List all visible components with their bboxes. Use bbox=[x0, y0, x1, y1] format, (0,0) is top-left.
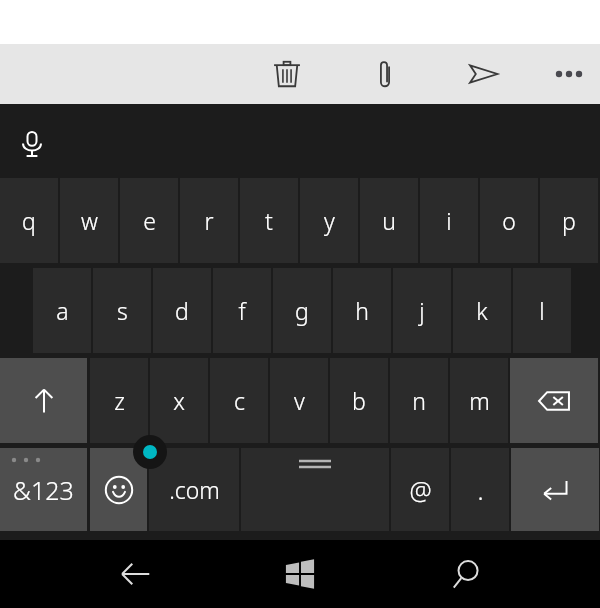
button[interactable]: Emoji bbox=[90, 448, 147, 531]
staticText: o bbox=[502, 205, 516, 236]
staticText: q bbox=[22, 205, 36, 236]
staticText: v bbox=[294, 385, 305, 416]
button[interactable]: Back bbox=[104, 543, 166, 605]
button[interactable]: Enter bbox=[511, 448, 599, 531]
button[interactable]: q bbox=[0, 178, 58, 263]
button[interactable]: i bbox=[420, 178, 478, 263]
button[interactable]: t bbox=[240, 178, 298, 263]
button[interactable]: o bbox=[480, 178, 538, 263]
button[interactable]: h bbox=[333, 268, 391, 353]
staticText: n bbox=[412, 385, 426, 416]
staticText: a bbox=[56, 295, 69, 326]
button[interactable]: Search bbox=[435, 543, 497, 605]
staticText: t bbox=[265, 205, 273, 236]
button[interactable]: n bbox=[390, 358, 448, 443]
button[interactable]: k bbox=[453, 268, 511, 353]
button[interactable]: j bbox=[393, 268, 451, 353]
button[interactable]: c bbox=[210, 358, 268, 443]
staticText: z bbox=[114, 385, 125, 416]
button[interactable]: Start bbox=[269, 543, 331, 605]
button[interactable]: f bbox=[213, 268, 271, 353]
button[interactable]: Send bbox=[454, 45, 512, 103]
staticText: y bbox=[324, 205, 335, 236]
staticText: . bbox=[477, 473, 484, 507]
button[interactable]: v bbox=[270, 358, 328, 443]
staticText: s bbox=[117, 295, 128, 326]
button[interactable]: @ bbox=[391, 448, 449, 531]
staticText: g bbox=[295, 295, 309, 326]
button[interactable]: More options bbox=[540, 45, 598, 103]
button[interactable]: &123 bbox=[0, 448, 87, 531]
button[interactable]: w bbox=[60, 178, 118, 263]
staticText: @ bbox=[409, 473, 432, 507]
button[interactable]: u bbox=[360, 178, 418, 263]
staticText: w bbox=[81, 205, 98, 236]
staticText: r bbox=[204, 205, 214, 236]
button[interactable]: l bbox=[513, 268, 571, 353]
button[interactable]: s bbox=[93, 268, 151, 353]
staticText: u bbox=[382, 205, 396, 236]
button[interactable]: .com bbox=[149, 448, 239, 531]
button[interactable]: b bbox=[330, 358, 388, 443]
button[interactable]: Attach bbox=[356, 45, 414, 103]
button[interactable]: e bbox=[120, 178, 178, 263]
button[interactable]: . bbox=[451, 448, 509, 531]
staticText: b bbox=[352, 385, 366, 416]
button[interactable]: g bbox=[273, 268, 331, 353]
staticText: .com bbox=[169, 474, 220, 505]
button[interactable]: a bbox=[33, 268, 91, 353]
button[interactable]: p bbox=[540, 178, 598, 263]
button[interactable]: Delete bbox=[258, 45, 316, 103]
staticText: j bbox=[419, 295, 425, 326]
button[interactable]: d bbox=[153, 268, 211, 353]
staticText: d bbox=[175, 295, 189, 326]
button[interactable]: z bbox=[90, 358, 148, 443]
staticText: h bbox=[355, 295, 369, 326]
staticText: k bbox=[476, 295, 488, 326]
staticText: e bbox=[143, 205, 156, 236]
button[interactable]: Backspace bbox=[510, 358, 598, 443]
button[interactable]: Space bbox=[241, 448, 389, 531]
staticText: &123 bbox=[13, 473, 74, 507]
staticText: i bbox=[446, 205, 452, 236]
button[interactable]: Voice input bbox=[8, 120, 56, 168]
staticText: f bbox=[238, 295, 246, 326]
button[interactable]: Shift bbox=[0, 358, 87, 443]
staticText: c bbox=[234, 385, 245, 416]
staticText: m bbox=[469, 385, 490, 416]
button[interactable]: x bbox=[150, 358, 208, 443]
staticText: x bbox=[173, 385, 185, 416]
staticText: l bbox=[539, 295, 545, 326]
staticText: p bbox=[562, 205, 576, 236]
button[interactable]: m bbox=[450, 358, 508, 443]
button[interactable]: y bbox=[300, 178, 358, 263]
button[interactable]: r bbox=[180, 178, 238, 263]
